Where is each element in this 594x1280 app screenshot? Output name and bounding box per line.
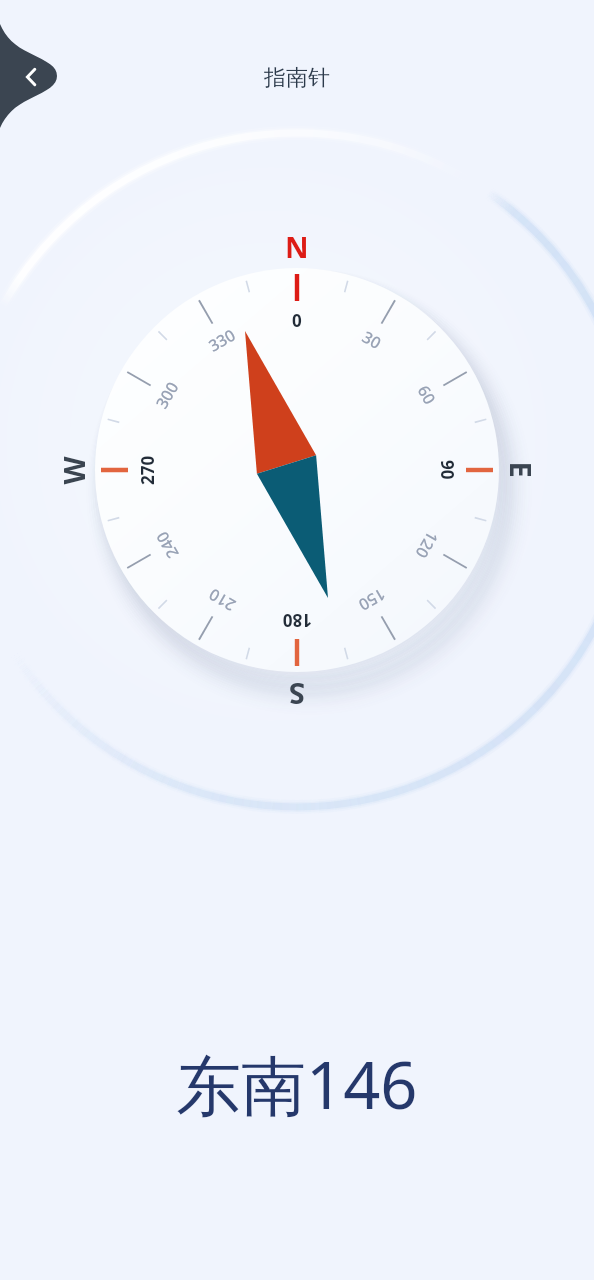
other: Back <box>26 68 36 86</box>
staticText: 东南146 <box>176 1040 418 1129</box>
button[interactable]: Back <box>0 24 57 128</box>
staticText: 指南针 <box>264 64 330 92</box>
